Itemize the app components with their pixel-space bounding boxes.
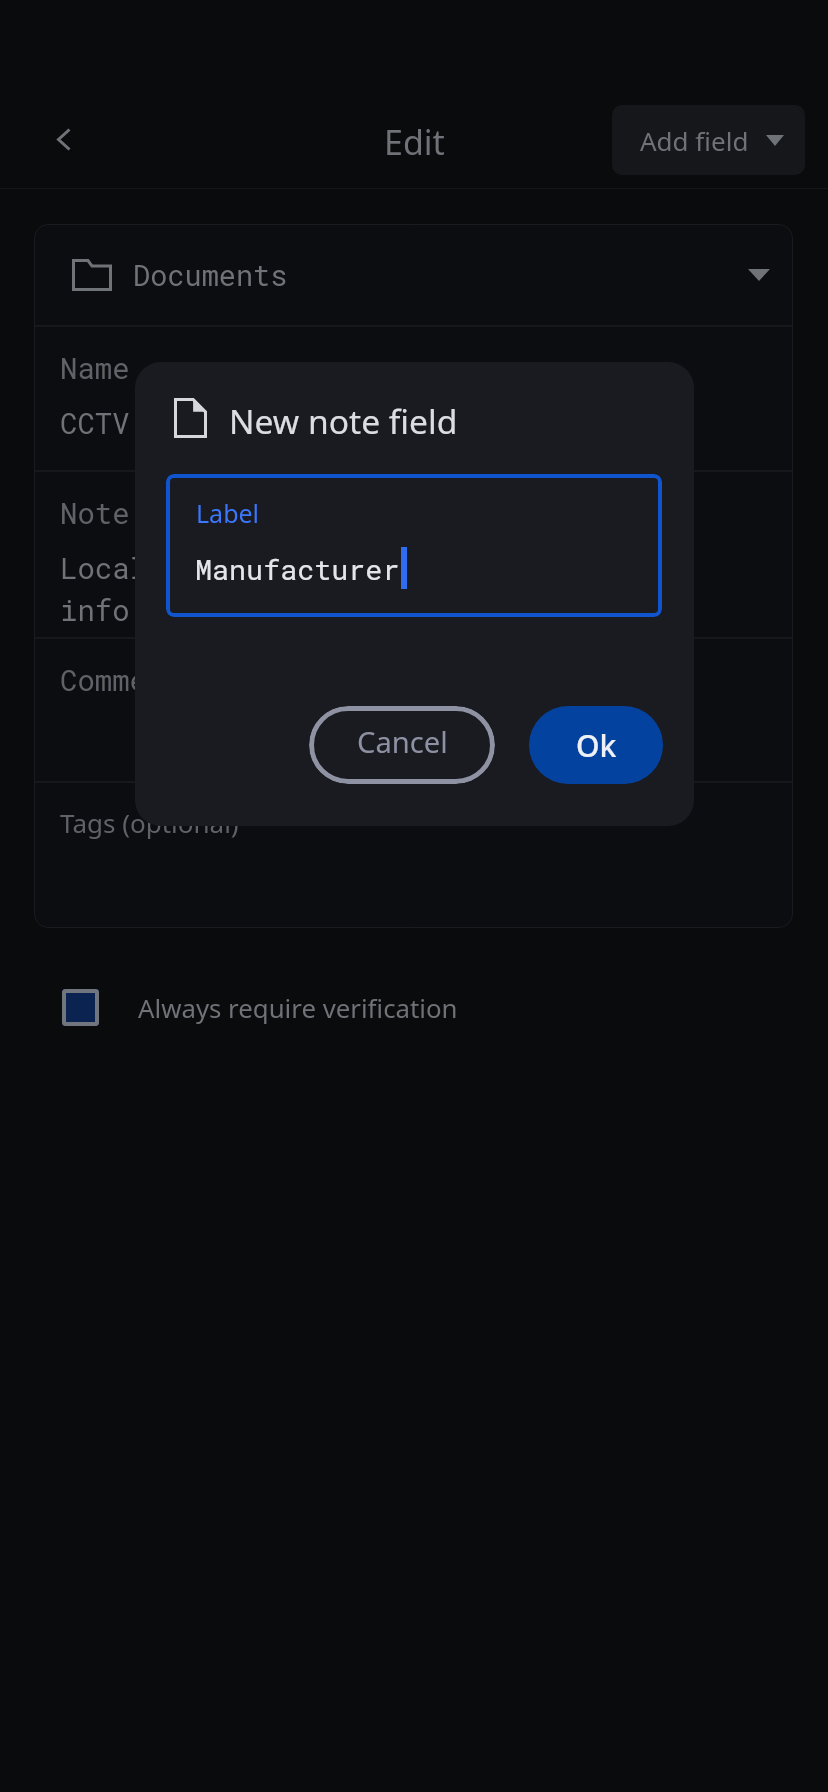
staticText: Add field: [640, 123, 749, 158]
button[interactable]: Always require verification: [0, 977, 828, 1037]
staticText: Cancel: [357, 722, 448, 762]
staticText: Label: [196, 496, 260, 530]
staticText: Name: [60, 349, 130, 387]
staticText: Edit: [384, 119, 445, 165]
button[interactable]: Cancel: [309, 706, 495, 784]
button[interactable]: Note: [34, 472, 793, 637]
staticText: Manufacturer: [195, 550, 400, 587]
staticText: Note: [60, 494, 130, 532]
staticText: Documents: [133, 256, 288, 294]
button[interactable]: Add field: [612, 105, 805, 175]
staticText: Ok: [576, 725, 617, 766]
staticText: Tags (optional): [60, 805, 239, 840]
button[interactable]: Name: [34, 327, 793, 470]
staticText: Local info: [60, 549, 148, 628]
staticText: Comment: [60, 661, 182, 699]
staticText: New note field: [229, 398, 458, 444]
staticText: CCTV camera: [60, 404, 252, 442]
button[interactable]: Ok: [529, 706, 663, 784]
button[interactable]: Comment: [34, 639, 793, 781]
button[interactable]: Back: [24, 99, 104, 179]
button[interactable]: Tags (optional): [34, 783, 793, 928]
staticText: Always require verification: [138, 990, 458, 1025]
button[interactable]: Documents: [34, 224, 793, 325]
